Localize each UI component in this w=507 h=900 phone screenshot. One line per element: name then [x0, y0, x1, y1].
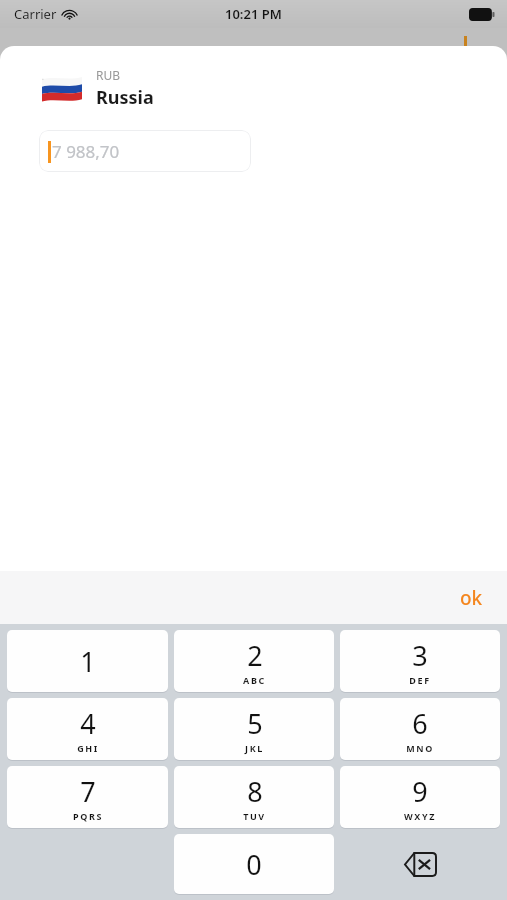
staticText: 6	[412, 705, 428, 742]
button[interactable]: 4	[7, 698, 168, 760]
staticText: DEF	[409, 674, 431, 686]
staticText: 1	[80, 643, 96, 680]
staticText: 10:21 PM	[225, 5, 282, 23]
button[interactable]: 3	[340, 630, 500, 692]
staticText: 2	[247, 637, 263, 674]
button[interactable]: 1	[7, 630, 168, 692]
staticText: WXYZ	[404, 810, 436, 822]
button[interactable]: 7 988,70	[39, 130, 251, 172]
staticText: 9	[412, 773, 428, 810]
staticText: PQRS	[73, 810, 103, 822]
button[interactable]: Delete	[340, 834, 500, 894]
staticText: 7	[80, 773, 96, 810]
staticText: 5	[247, 705, 263, 742]
button[interactable]: 9	[340, 766, 500, 828]
button[interactable]: 5	[174, 698, 334, 760]
button[interactable]: 0	[174, 834, 334, 894]
staticText: Carrier	[14, 5, 57, 23]
staticText: 8	[247, 773, 263, 810]
staticText: JKL	[245, 742, 264, 754]
staticText: TUV	[243, 810, 266, 822]
button[interactable]: ok	[446, 579, 497, 617]
staticText: MNO	[406, 742, 434, 754]
staticText: 3	[412, 637, 428, 674]
staticText: RUB	[96, 67, 121, 83]
staticText: ok	[460, 585, 483, 611]
staticText: GHI	[77, 742, 99, 754]
button[interactable]: 2	[174, 630, 334, 692]
staticText: 4	[80, 705, 96, 742]
staticText: 7 988,70	[52, 140, 120, 163]
button[interactable]: RUB	[0, 67, 507, 110]
staticText: Russia	[96, 85, 154, 110]
button[interactable]: 7	[7, 766, 168, 828]
button[interactable]: 8	[174, 766, 334, 828]
button[interactable]: 6	[340, 698, 500, 760]
staticText: 0	[246, 846, 262, 883]
staticText: ABC	[243, 674, 266, 686]
